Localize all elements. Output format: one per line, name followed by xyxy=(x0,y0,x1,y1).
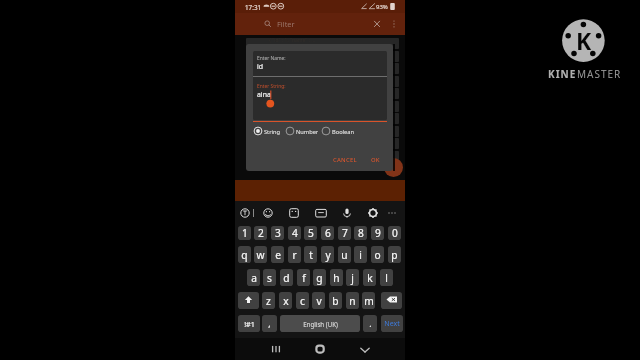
staticText: 93% xyxy=(376,3,388,11)
button[interactable]: 6 xyxy=(321,226,334,240)
button[interactable]: OK xyxy=(369,153,385,166)
button[interactable]: Enter Name: xyxy=(253,51,387,77)
staticText: OK xyxy=(371,156,380,164)
staticText: i xyxy=(359,248,362,262)
button[interactable]: u xyxy=(338,246,351,263)
button[interactable]: g xyxy=(313,269,326,286)
staticText: . xyxy=(369,318,372,330)
staticText: e xyxy=(275,248,281,262)
button[interactable]: Add xyxy=(384,158,403,177)
button[interactable]: Keyboard settings xyxy=(364,204,382,222)
staticText: f xyxy=(302,271,306,285)
button[interactable]: e xyxy=(271,246,284,263)
button[interactable]: Next xyxy=(381,315,403,332)
button[interactable]: o xyxy=(371,246,384,263)
staticText: 1 xyxy=(242,226,248,240)
staticText: KINE xyxy=(548,67,577,81)
button[interactable]: Backspace xyxy=(381,292,402,309)
button[interactable]: 9 xyxy=(371,226,384,240)
button[interactable]: Filter xyxy=(261,14,367,34)
button[interactable]: b xyxy=(329,292,342,309)
button[interactable]: Voice input xyxy=(338,204,356,222)
button[interactable]: 5 xyxy=(304,226,317,240)
staticText: m xyxy=(364,294,374,308)
button[interactable]: l xyxy=(380,269,393,286)
button[interactable]: t xyxy=(304,246,317,263)
staticText: 3 xyxy=(275,226,281,240)
staticText: English (UK) xyxy=(303,320,338,328)
staticText: CANCEL xyxy=(333,156,357,164)
button[interactable]: Number xyxy=(284,125,324,137)
button[interactable]: , xyxy=(262,315,277,332)
button[interactable]: a xyxy=(247,269,260,286)
staticText: { "id" : 1, "name" : ... xyxy=(269,37,316,44)
staticText: 6 xyxy=(325,226,331,240)
button[interactable]: 0 xyxy=(388,226,401,240)
staticText: 4 xyxy=(292,226,298,240)
button[interactable]: Stickers xyxy=(285,204,303,222)
button[interactable]: z xyxy=(262,292,275,309)
staticText: q xyxy=(241,248,248,262)
button[interactable]: Emoji xyxy=(259,204,277,222)
button[interactable]: w xyxy=(254,246,267,263)
button[interactable]: n xyxy=(346,292,359,309)
staticText: t xyxy=(309,248,313,262)
staticText: g xyxy=(316,271,323,285)
button[interactable]: d xyxy=(280,269,293,286)
button[interactable]: k xyxy=(363,269,376,286)
button[interactable]: Recents xyxy=(266,340,284,358)
staticText: !#1 xyxy=(244,319,255,329)
button[interactable]: 1 xyxy=(238,226,251,240)
button[interactable]: 2 xyxy=(254,226,267,240)
staticText: 8 xyxy=(358,226,364,240)
button[interactable]: English (UK) xyxy=(280,315,360,332)
button[interactable]: Home xyxy=(311,340,329,358)
staticText: 17:31 xyxy=(245,3,262,12)
button[interactable]: q xyxy=(238,246,251,263)
staticText: b xyxy=(332,294,339,308)
staticText: Enter Name: xyxy=(257,55,286,62)
staticText: k xyxy=(367,271,373,285)
button[interactable]: Hide keyboard xyxy=(356,340,374,358)
button[interactable]: Enter String: xyxy=(253,78,387,119)
button[interactable]: Clear xyxy=(370,16,384,32)
button[interactable]: !#1 xyxy=(238,315,260,332)
staticText: 5 xyxy=(308,226,314,240)
button[interactable]: h xyxy=(330,269,343,286)
button[interactable]: 4 xyxy=(288,226,301,240)
staticText: Enter String: xyxy=(257,83,286,90)
button[interactable]: Shift xyxy=(238,292,259,309)
staticText: z xyxy=(266,294,271,308)
staticText: 7 xyxy=(342,226,348,240)
button[interactable]: j xyxy=(346,269,359,286)
button[interactable]: CANCEL xyxy=(332,153,362,166)
button[interactable]: p xyxy=(388,246,401,263)
staticText: y xyxy=(325,248,331,262)
button[interactable]: i xyxy=(354,246,367,263)
button[interactable]: 8 xyxy=(354,226,367,240)
button[interactable]: y xyxy=(321,246,334,263)
staticText: r xyxy=(292,248,297,262)
staticText: String xyxy=(264,128,281,136)
button[interactable]: . xyxy=(363,315,377,332)
button[interactable]: 7 xyxy=(338,226,351,240)
staticText: c xyxy=(300,294,305,308)
button[interactable]: x xyxy=(279,292,292,309)
staticText: d xyxy=(283,271,290,285)
button[interactable]: 3 xyxy=(271,226,284,240)
button[interactable]: More xyxy=(383,204,401,222)
button[interactable]: String xyxy=(252,125,286,137)
button[interactable]: Keyboard modes xyxy=(236,204,254,222)
button[interactable]: r xyxy=(288,246,301,263)
button[interactable]: m xyxy=(362,292,375,309)
button[interactable]: v xyxy=(312,292,325,309)
button[interactable]: Boolean xyxy=(320,125,360,137)
button[interactable]: c xyxy=(296,292,309,309)
button[interactable]: More options xyxy=(387,16,401,32)
staticText: h xyxy=(333,271,340,285)
staticText: w xyxy=(256,248,265,262)
staticText: id xyxy=(257,62,264,71)
button[interactable]: f xyxy=(297,269,310,286)
button[interactable]: GIF keyboard xyxy=(312,204,330,222)
button[interactable]: s xyxy=(263,269,276,286)
